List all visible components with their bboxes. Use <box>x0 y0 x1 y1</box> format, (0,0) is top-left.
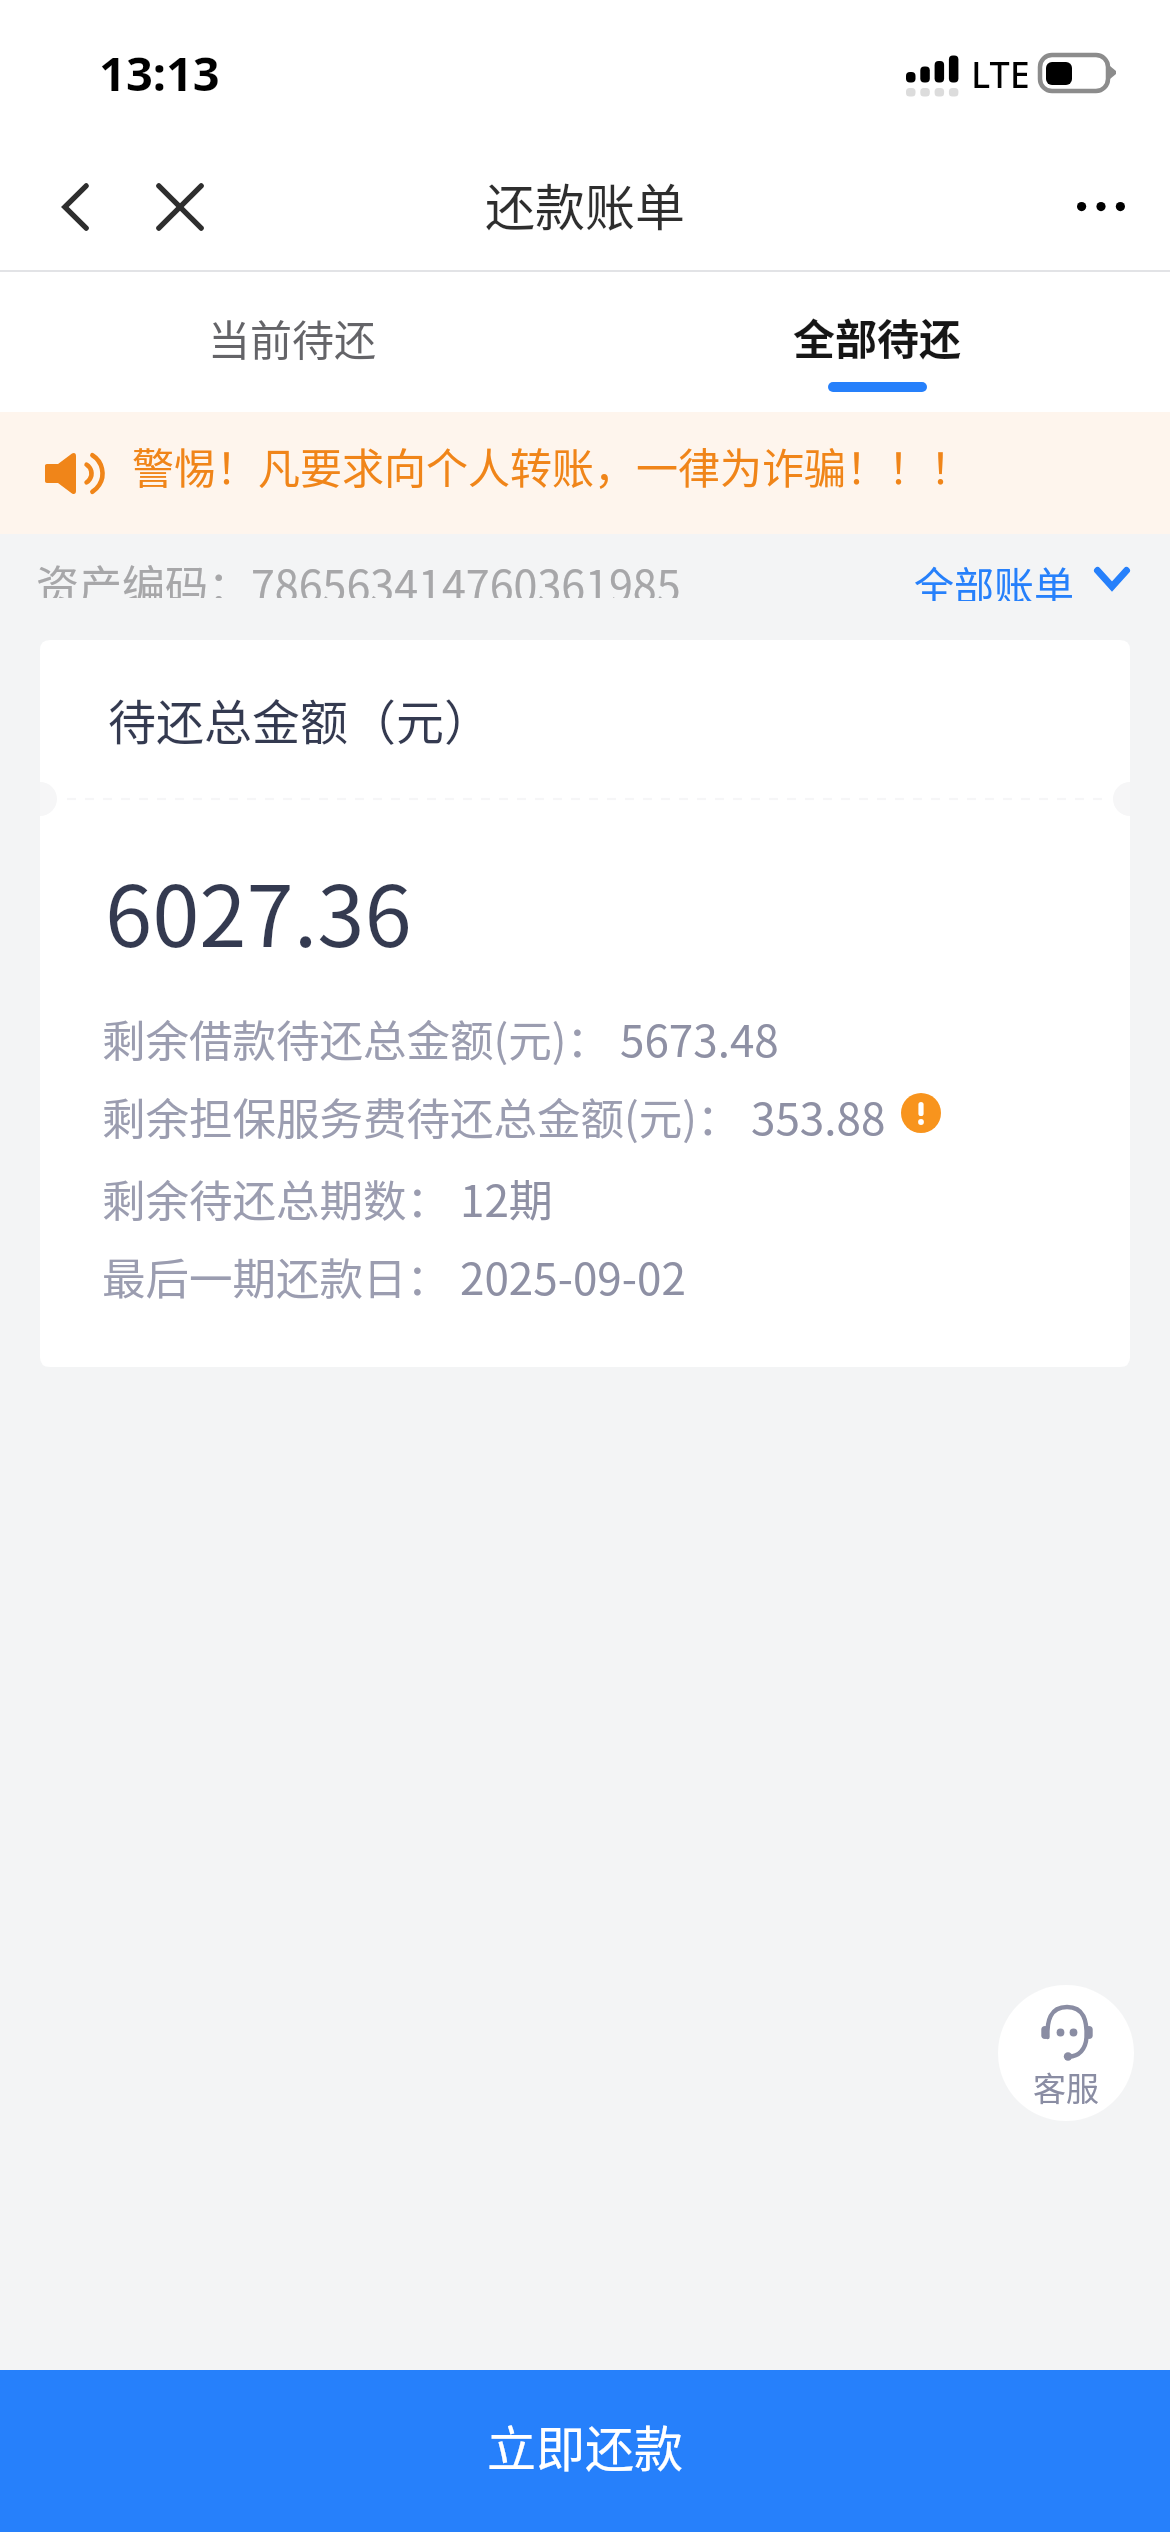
staticText: 当前待还 <box>208 307 377 368</box>
staticText: 全部待还 <box>793 306 962 367</box>
staticText: 5673.48 <box>620 1006 779 1070</box>
button[interactable]: More options <box>1051 156 1151 256</box>
staticText: 还款账单 <box>485 168 685 240</box>
staticText: 待还总金额（元） <box>108 684 493 754</box>
staticText: 13:13 <box>99 41 220 105</box>
staticText: 资产编码：786563414760361985 <box>36 552 681 598</box>
button[interactable]: 客服 <box>998 1985 1134 2121</box>
staticText: 353.88 <box>751 1084 886 1148</box>
staticText: 警惕！凡要求向个人转账，一律为诈骗！！！ <box>132 435 973 496</box>
staticText: 全部账单 <box>914 555 1074 601</box>
button[interactable]: 全部账单 <box>914 555 1130 601</box>
staticText: 客服 <box>1033 2063 1099 2111</box>
staticText: 剩余借款待还总金额(元)： <box>102 1007 610 1070</box>
button[interactable]: 立即还款 <box>0 2370 1170 2532</box>
staticText: 剩余担保服务费待还总金额(元)： <box>102 1085 741 1148</box>
staticText: 12期 <box>460 1166 553 1230</box>
staticText: 最后一期还款日： <box>102 1245 450 1308</box>
staticText: 2025-09-02 <box>460 1244 686 1308</box>
button[interactable]: 全部待还 <box>585 272 1170 412</box>
button[interactable]: 当前待还 <box>0 272 585 412</box>
staticText: 立即还款 <box>487 2410 684 2481</box>
staticText: 6027.36 <box>105 848 412 971</box>
button[interactable]: 说明 <box>901 1093 941 1133</box>
button[interactable]: Close <box>130 156 230 256</box>
button[interactable]: Back <box>16 156 116 256</box>
staticText: 剩余待还总期数： <box>102 1167 450 1230</box>
staticText: LTE <box>971 50 1030 99</box>
